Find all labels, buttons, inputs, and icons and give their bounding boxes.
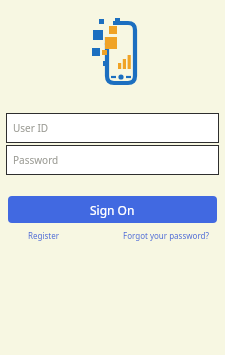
other: App logo (85, 17, 141, 87)
button[interactable]: Register (28, 230, 60, 241)
button[interactable]: Forgot your password? (123, 230, 209, 241)
button[interactable]: Password (6, 145, 219, 175)
staticText: Forgot your password? (123, 230, 209, 241)
staticText: Sign On (90, 202, 135, 218)
staticText: Password (13, 153, 59, 167)
button[interactable]: User ID (6, 113, 219, 143)
staticText: Register (28, 230, 60, 241)
staticText: User ID (13, 121, 49, 135)
button[interactable]: Sign On (8, 196, 217, 223)
